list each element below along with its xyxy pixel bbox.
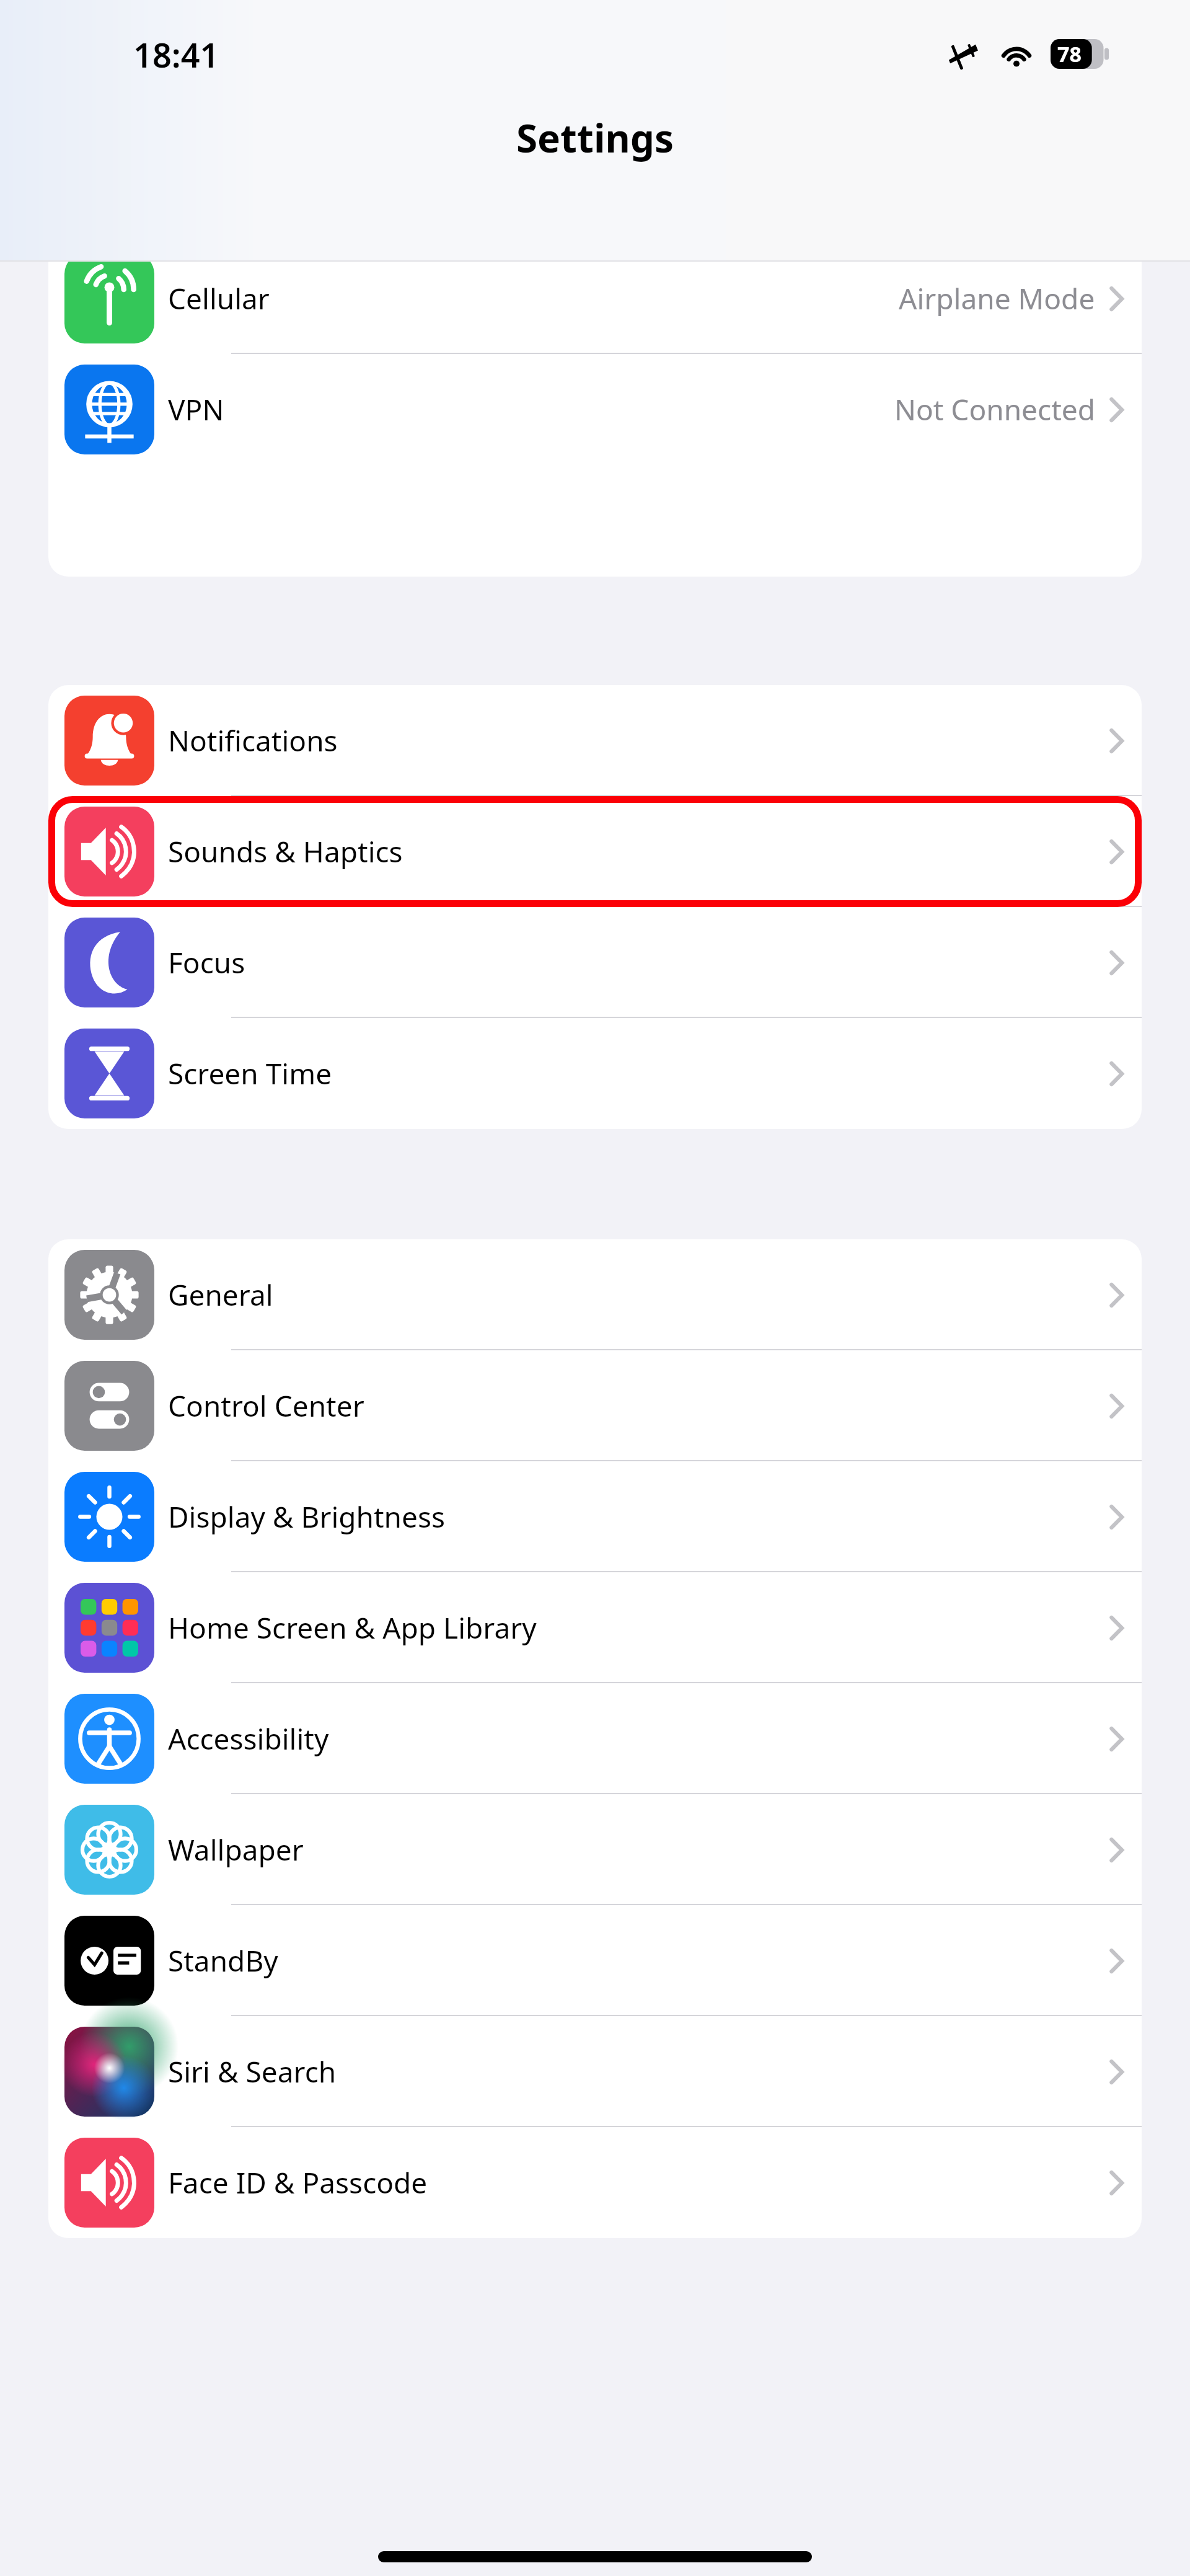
button[interactable]: Accessibility xyxy=(48,1683,1142,1794)
button[interactable]: Screen Time xyxy=(48,1018,1142,1129)
staticText: Home Screen & App Library xyxy=(168,1608,537,1647)
staticText: Not Connected xyxy=(894,390,1095,429)
button[interactable]: StandBy xyxy=(48,1905,1142,2016)
staticText: VPN xyxy=(168,390,224,429)
button[interactable]: VPN xyxy=(48,354,1142,465)
button[interactable]: Display & Brightness xyxy=(48,1461,1142,1572)
staticText: StandBy xyxy=(168,1941,278,1980)
button[interactable]: Cellular xyxy=(48,262,1142,354)
staticText: Focus xyxy=(168,943,245,982)
button[interactable]: Face ID & Passcode xyxy=(48,2127,1142,2238)
staticText: Screen Time xyxy=(168,1054,332,1093)
staticText: 78 xyxy=(1057,40,1082,68)
button[interactable]: Control Center xyxy=(48,1350,1142,1461)
staticText: 18:41 xyxy=(133,32,219,77)
staticText: Notifications xyxy=(168,721,338,760)
staticText: Sounds & Haptics xyxy=(168,832,403,871)
button[interactable]: Sounds & Haptics xyxy=(48,796,1142,907)
button[interactable]: Focus xyxy=(48,907,1142,1018)
staticText: Settings xyxy=(0,112,1190,164)
staticText: Cellular xyxy=(168,279,270,318)
staticText: Airplane Mode xyxy=(899,279,1095,318)
button[interactable]: Wallpaper xyxy=(48,1794,1142,1905)
button[interactable]: Home Screen & App Library xyxy=(48,1572,1142,1683)
staticText: General xyxy=(168,1275,273,1314)
button[interactable]: General xyxy=(48,1239,1142,1350)
staticText: Control Center xyxy=(168,1386,364,1425)
staticText: Siri & Search xyxy=(168,2052,337,2091)
staticText: Face ID & Passcode xyxy=(168,2163,428,2202)
button[interactable]: Siri & Search xyxy=(48,2016,1142,2127)
button[interactable]: Notifications xyxy=(48,685,1142,796)
staticText: Wallpaper xyxy=(168,1830,304,1869)
staticText: Accessibility xyxy=(168,1719,329,1758)
staticText: Display & Brightness xyxy=(168,1497,446,1536)
